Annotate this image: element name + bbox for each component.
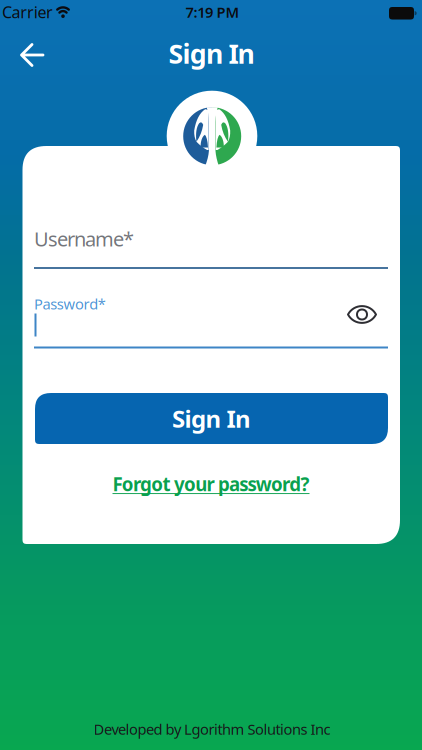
button[interactable]: Show password xyxy=(339,297,384,331)
button[interactable]: Username xyxy=(34,223,388,269)
staticText: Sign In xyxy=(168,36,255,71)
staticText: 7:19 PM xyxy=(186,2,239,22)
staticText: Password* xyxy=(34,294,106,313)
staticText: Carrier xyxy=(2,1,53,23)
staticText: Developed by Lgorithm Solutions Inc xyxy=(93,719,330,739)
button[interactable]: Back xyxy=(10,34,54,76)
button[interactable]: Sign In xyxy=(35,393,388,444)
staticText: Forgot your password? xyxy=(112,472,309,496)
button[interactable]: Password xyxy=(34,295,388,348)
staticText: Username* xyxy=(34,225,134,252)
staticText: Sign In xyxy=(172,403,251,434)
button[interactable]: Forgot your password? xyxy=(112,472,309,496)
